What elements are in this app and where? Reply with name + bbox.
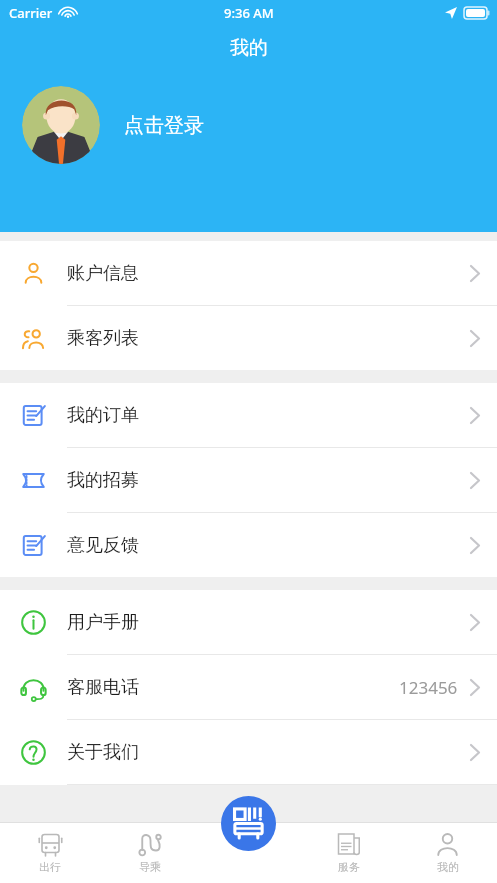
button[interactable]: 点击登录 xyxy=(22,86,214,164)
staticText: Carrier xyxy=(9,4,53,22)
staticText: 我的招募 xyxy=(67,469,139,492)
staticText: 关于我们 xyxy=(67,741,139,764)
staticText: 用户手册 xyxy=(67,611,139,634)
button[interactable]: 客服电话 xyxy=(0,655,497,719)
button[interactable]: 导乘 xyxy=(100,823,200,883)
staticText: 乘客列表 xyxy=(67,327,139,350)
staticText: 我的订单 xyxy=(67,404,139,427)
staticText: 导乘 xyxy=(139,860,161,874)
staticText: 账户信息 xyxy=(67,262,139,285)
staticText: 出行 xyxy=(39,860,61,874)
button[interactable]: 服务 xyxy=(299,823,398,883)
button[interactable]: 出行 xyxy=(0,823,100,883)
staticText: 意见反馈 xyxy=(67,534,139,557)
button[interactable]: 账户信息 xyxy=(0,241,497,305)
button[interactable]: 用户手册 xyxy=(0,590,497,654)
staticText: 123456 xyxy=(399,676,458,699)
button[interactable]: 意见反馈 xyxy=(0,513,497,577)
staticText: 9:36 AM xyxy=(224,4,274,22)
staticText: 我的 xyxy=(437,860,459,874)
button[interactable]: 乘客列表 xyxy=(0,306,497,370)
button[interactable]: 我的 xyxy=(398,823,497,883)
staticText: 我的 xyxy=(230,36,268,60)
staticText: 点击登录 xyxy=(124,113,204,138)
button[interactable]: 关于我们 xyxy=(0,720,497,784)
button[interactable]: 我的订单 xyxy=(0,383,497,447)
button[interactable]: 扫码乘车 xyxy=(221,796,276,851)
staticText: 服务 xyxy=(338,860,360,874)
button[interactable]: 我的招募 xyxy=(0,448,497,512)
staticText: 客服电话 xyxy=(67,676,139,699)
